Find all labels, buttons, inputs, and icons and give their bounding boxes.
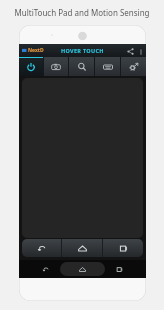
button[interactable]: Camera	[44, 57, 68, 76]
button[interactable]: Keyboard	[95, 57, 120, 76]
button[interactable]: More options	[136, 47, 145, 56]
button[interactable]: NextD	[22, 47, 44, 54]
button[interactable]: Search	[69, 57, 94, 76]
button[interactable]: Share	[124, 45, 136, 57]
staticText: HOVER TOUCH	[61, 47, 104, 54]
button[interactable]: Motion sensing	[121, 57, 146, 76]
button[interactable]: Back	[39, 263, 52, 276]
button[interactable]: Home	[60, 262, 105, 276]
button[interactable]: Back	[22, 239, 61, 257]
button[interactable]: Power	[19, 57, 43, 76]
button[interactable]: Home	[62, 239, 102, 257]
staticText: MultiTouch Pad and Motion Sensing	[14, 7, 150, 18]
button[interactable]: Recents	[103, 239, 143, 257]
staticText: NextD	[28, 47, 44, 54]
button[interactable]: Recents	[113, 263, 126, 276]
